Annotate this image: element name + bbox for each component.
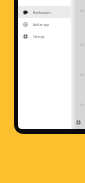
button[interactable]: Settings	[74, 118, 83, 127]
staticText: Settings	[80, 103, 85, 107]
staticText: Notifications	[33, 11, 51, 15]
staticText: Settings	[80, 9, 85, 13]
staticText: Settings	[33, 35, 45, 39]
button[interactable]: Notifications	[18, 6, 71, 18]
button[interactable]: Add an app	[18, 18, 71, 30]
staticText: Settings	[80, 73, 85, 77]
staticText: Add an app	[33, 23, 50, 27]
staticText: Settings	[80, 43, 85, 47]
button[interactable]: Settings	[18, 30, 71, 42]
